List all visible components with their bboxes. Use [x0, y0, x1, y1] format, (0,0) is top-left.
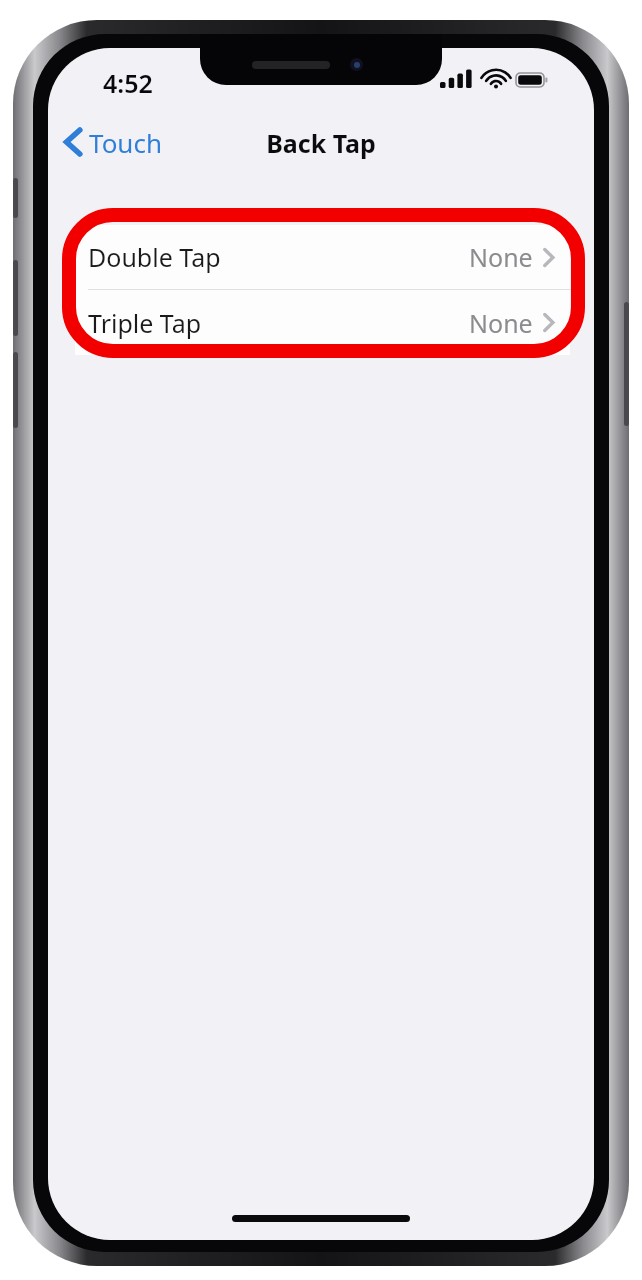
staticText: Touch	[89, 125, 162, 160]
staticText: Triple Tap	[88, 306, 202, 340]
staticText: 4:52	[103, 66, 153, 100]
staticText: None	[469, 306, 533, 340]
button[interactable]: Touch	[56, 120, 174, 164]
staticText: Back Tap	[266, 126, 376, 160]
other: Home indicator	[232, 1215, 410, 1222]
staticText: None	[469, 240, 533, 274]
staticText: Double Tap	[88, 240, 221, 274]
button[interactable]: Double Tap	[75, 225, 570, 289]
button[interactable]: Triple Tap	[75, 290, 570, 355]
